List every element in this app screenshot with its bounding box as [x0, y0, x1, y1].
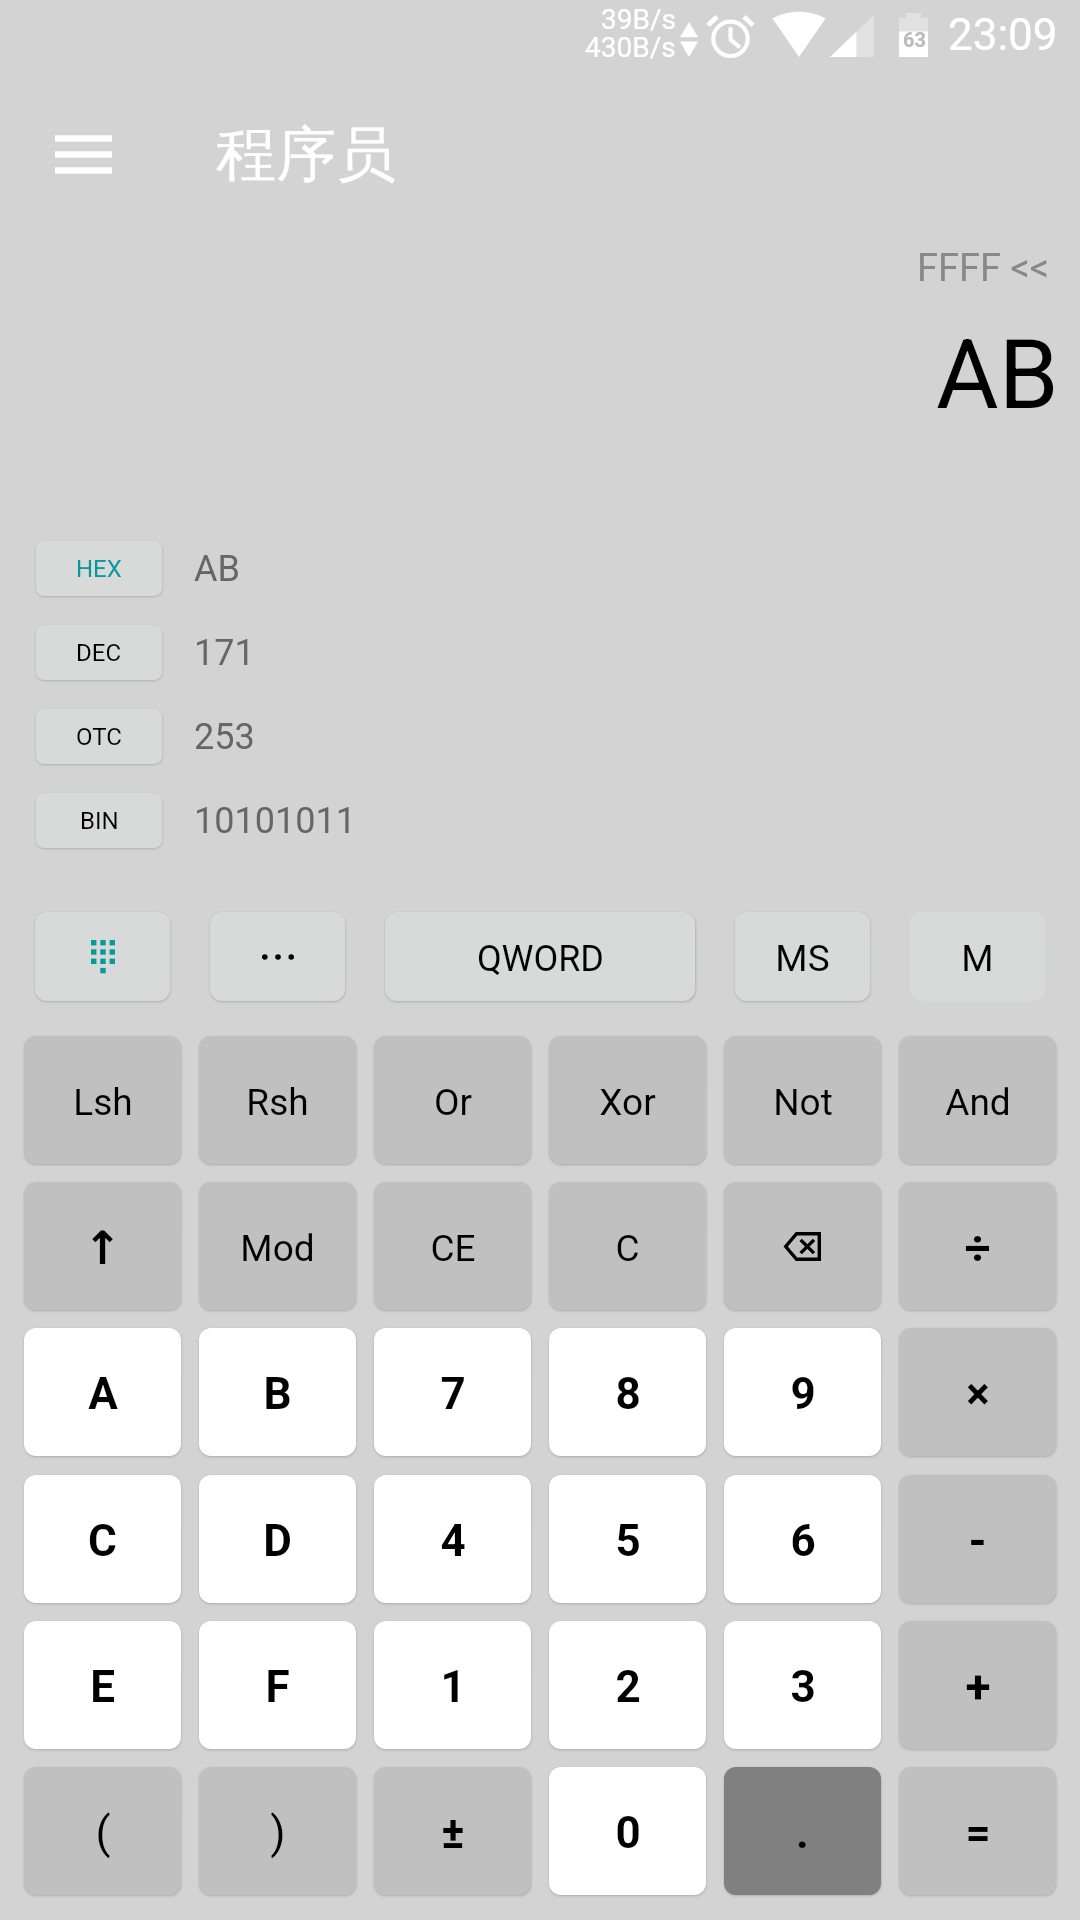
staticText: - — [968, 1514, 987, 1568]
button[interactable]: - — [899, 1475, 1056, 1603]
button[interactable]: 8 — [549, 1328, 706, 1456]
staticText: 63 — [903, 28, 926, 51]
button[interactable]: Rsh — [199, 1036, 356, 1164]
button[interactable]: 0 — [549, 1767, 706, 1895]
button[interactable]: 4 — [374, 1475, 531, 1603]
staticText: 39B/s — [601, 3, 676, 36]
button[interactable]: Mod — [199, 1182, 356, 1310]
button[interactable]: ± — [374, 1767, 531, 1895]
button[interactable]: 7 — [374, 1328, 531, 1456]
button[interactable]: Not — [724, 1036, 881, 1164]
staticText: And — [945, 1081, 1011, 1124]
button[interactable]: 9 — [724, 1328, 881, 1456]
staticText: C — [88, 1515, 117, 1567]
button[interactable]: ) — [199, 1767, 356, 1895]
staticText: 253 — [194, 716, 255, 758]
staticText: 0 — [615, 1807, 641, 1859]
staticText: Or — [434, 1081, 472, 1124]
button[interactable]: D — [199, 1475, 356, 1603]
staticText: 4 — [440, 1515, 466, 1567]
staticText: C — [615, 1227, 640, 1270]
staticText: = — [965, 1807, 991, 1859]
staticText: . — [796, 1807, 809, 1859]
button[interactable]: B — [199, 1328, 356, 1456]
button[interactable]: . — [724, 1767, 881, 1895]
button[interactable]: QWORD — [385, 912, 695, 1001]
button[interactable]: + — [899, 1621, 1056, 1749]
button[interactable]: And — [899, 1036, 1056, 1164]
staticText: OTC — [76, 723, 122, 751]
button[interactable]: = — [899, 1767, 1056, 1895]
staticText: 7 — [440, 1368, 466, 1420]
button[interactable]: Backspace — [724, 1182, 881, 1310]
button[interactable]: 6 — [724, 1475, 881, 1603]
staticText: ( — [95, 1807, 111, 1859]
staticText: 5 — [615, 1515, 641, 1567]
staticText: Not — [773, 1081, 833, 1124]
button[interactable]: ÷ — [899, 1182, 1056, 1310]
staticText: 430B/s — [585, 31, 676, 64]
staticText: F — [265, 1661, 290, 1713]
button[interactable]: M — [910, 912, 1045, 1001]
button[interactable]: Or — [374, 1036, 531, 1164]
button[interactable]: Keypad layout — [35, 912, 170, 1001]
staticText: 9 — [790, 1368, 816, 1420]
staticText: ↑ — [83, 1221, 122, 1275]
button[interactable]: Menu — [45, 118, 121, 194]
staticText: 23:09 — [948, 9, 1058, 61]
staticText: CE — [430, 1227, 476, 1270]
button[interactable]: C — [24, 1475, 181, 1603]
button[interactable]: F — [199, 1621, 356, 1749]
staticText: QWORD — [477, 938, 604, 980]
staticText: 3 — [790, 1661, 816, 1713]
staticText: 1 — [440, 1661, 466, 1713]
staticText: 2 — [615, 1661, 641, 1713]
button[interactable]: 2 — [549, 1621, 706, 1749]
staticText: B — [263, 1368, 292, 1420]
button[interactable]: A — [24, 1328, 181, 1456]
button[interactable]: 1 — [374, 1621, 531, 1749]
staticText: M — [961, 937, 994, 980]
staticText: D — [263, 1515, 292, 1567]
staticText: DEC — [76, 639, 122, 667]
staticText: 10101011 — [194, 800, 356, 842]
staticText: 8 — [615, 1368, 641, 1420]
staticText: Mod — [240, 1227, 315, 1270]
staticText: 程序员 — [216, 117, 396, 193]
button[interactable]: ↑ — [24, 1182, 181, 1310]
staticText: E — [90, 1661, 115, 1713]
button[interactable]: HEX — [36, 541, 162, 596]
staticText: ± — [441, 1807, 465, 1859]
staticText: BIN — [80, 807, 119, 835]
staticText: 171 — [194, 632, 255, 674]
staticText: AB — [194, 548, 240, 590]
button[interactable]: 5 — [549, 1475, 706, 1603]
staticText: ÷ — [964, 1221, 991, 1275]
staticText: A — [88, 1368, 118, 1420]
button[interactable]: 3 — [724, 1621, 881, 1749]
button[interactable]: Lsh — [24, 1036, 181, 1164]
staticText: MS — [775, 937, 830, 980]
button[interactable]: C — [549, 1182, 706, 1310]
staticText: Xor — [599, 1081, 656, 1124]
staticText: FFFF << — [917, 246, 1050, 291]
staticText: HEX — [76, 555, 122, 583]
button[interactable]: DEC — [36, 625, 162, 680]
button[interactable]: BIN — [36, 793, 162, 848]
button[interactable]: × — [899, 1328, 1056, 1456]
button[interactable]: Xor — [549, 1036, 706, 1164]
button[interactable]: More options — [210, 912, 345, 1001]
button[interactable]: CE — [374, 1182, 531, 1310]
staticText: × — [966, 1368, 990, 1420]
staticText: 6 — [790, 1515, 816, 1567]
staticText: Rsh — [246, 1081, 309, 1124]
button[interactable]: OTC — [36, 709, 162, 764]
button[interactable]: MS — [735, 912, 870, 1001]
button[interactable]: E — [24, 1621, 181, 1749]
staticText: ) — [270, 1807, 286, 1859]
staticText: Lsh — [73, 1081, 133, 1124]
button[interactable]: ( — [24, 1767, 181, 1895]
staticText: + — [965, 1660, 991, 1714]
staticText: AB — [936, 319, 1059, 432]
